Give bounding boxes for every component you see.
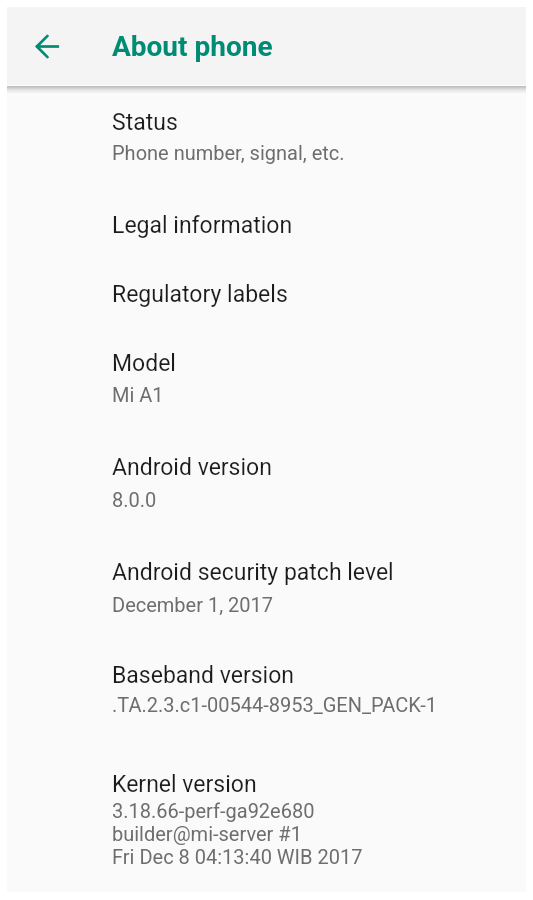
- staticText: Legal information: [112, 212, 293, 239]
- staticText: Baseband version: [112, 662, 294, 689]
- button[interactable]: Navigate up: [24, 22, 72, 70]
- button[interactable]: Model: [7, 320, 526, 420]
- staticText: Model: [112, 350, 176, 377]
- button[interactable]: Status: [7, 96, 526, 180]
- staticText: About phone: [112, 30, 273, 63]
- button[interactable]: Android security patch level: [7, 525, 526, 630]
- staticText: Kernel version: [112, 771, 257, 798]
- staticText: Android security patch level: [112, 559, 394, 586]
- button[interactable]: Kernel version: [7, 735, 526, 880]
- button[interactable]: Android version: [7, 420, 526, 525]
- staticText: Phone number, signal, etc.: [112, 141, 345, 164]
- staticText: 8.0.0: [112, 488, 157, 511]
- staticText: Android version: [112, 454, 272, 481]
- staticText: Regulatory labels: [112, 281, 288, 308]
- button[interactable]: Baseband version: [7, 630, 526, 735]
- staticText: builder@mi-server #1: [112, 822, 302, 845]
- button[interactable]: Legal information: [7, 180, 526, 250]
- staticText: Mi A1: [112, 383, 164, 406]
- staticText: Status: [112, 109, 178, 136]
- staticText: .TA.2.3.c1-00544-8953_GEN_PACK-1: [112, 693, 437, 716]
- button[interactable]: Regulatory labels: [7, 250, 526, 320]
- staticText: Fri Dec 8 04:13:40 WIB 2017: [112, 845, 363, 868]
- staticText: 3.18.66-perf-ga92e680: [112, 799, 315, 822]
- staticText: December 1, 2017: [112, 593, 274, 616]
